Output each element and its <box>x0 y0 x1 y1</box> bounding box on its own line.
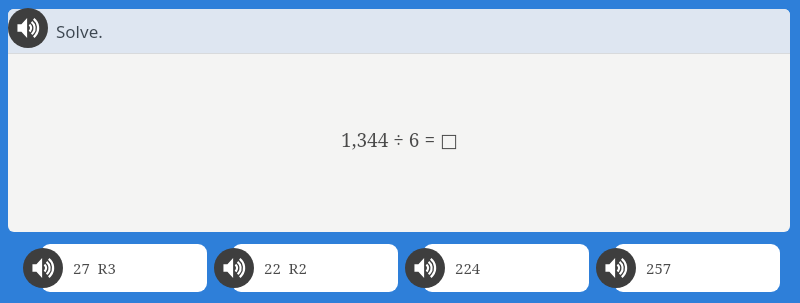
button[interactable]: Play audio <box>405 248 445 288</box>
button[interactable]: Play audio <box>23 248 63 288</box>
button[interactable]: 27 R3 <box>41 244 207 292</box>
button[interactable]: 224 <box>423 244 589 292</box>
staticText: 22 R2 <box>264 258 307 278</box>
button[interactable]: Play audio <box>8 8 48 48</box>
staticText: 27 R3 <box>73 258 116 278</box>
button[interactable]: 257 <box>614 244 780 292</box>
staticText: 1,344 ÷ 6 = □ <box>341 127 458 153</box>
staticText: 257 <box>646 258 672 278</box>
button[interactable]: Play audio <box>214 248 254 288</box>
button[interactable]: Play audio <box>596 248 636 288</box>
staticText: Solve. <box>56 20 103 43</box>
button[interactable]: 22 R2 <box>232 244 398 292</box>
staticText: 224 <box>455 258 481 278</box>
